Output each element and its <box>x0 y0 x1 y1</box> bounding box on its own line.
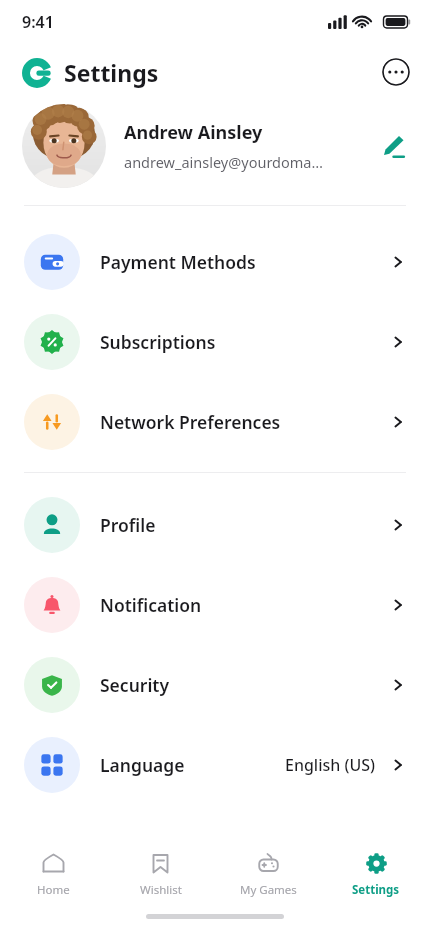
staticText: My Games <box>240 882 297 898</box>
button[interactable]: Home <box>0 840 107 908</box>
staticText: Notification <box>100 593 202 617</box>
button[interactable]: Edit profile <box>378 131 408 161</box>
staticText: Payment Methods <box>100 250 256 274</box>
staticText: andrew_ainsley@yourdoma… <box>124 152 323 172</box>
button[interactable]: Security <box>0 645 430 725</box>
button[interactable]: My Games <box>214 840 322 908</box>
button[interactable]: More options <box>382 58 410 86</box>
staticText: 9:41 <box>22 11 54 33</box>
button[interactable]: Language <box>0 725 430 805</box>
staticText: Settings <box>64 57 159 88</box>
staticText: Wishlist <box>140 882 182 898</box>
button[interactable]: Andrew Ainsley <box>0 100 430 192</box>
staticText: Home <box>37 882 70 898</box>
staticText: Subscriptions <box>100 330 216 354</box>
button[interactable]: Notification <box>0 565 430 645</box>
button[interactable]: Payment Methods <box>0 222 430 302</box>
staticText: Settings <box>352 882 400 898</box>
button[interactable]: Network Preferences <box>0 382 430 462</box>
staticText: Security <box>100 673 170 697</box>
button[interactable]: Profile <box>0 485 430 565</box>
staticText: Profile <box>100 513 156 537</box>
staticText: English (US) <box>285 754 376 776</box>
staticText: Language <box>100 753 185 777</box>
staticText: Network Preferences <box>100 410 281 434</box>
button[interactable]: Wishlist <box>107 840 214 908</box>
button[interactable]: Settings <box>322 840 430 908</box>
staticText: Andrew Ainsley <box>124 120 263 145</box>
button[interactable]: Subscriptions <box>0 302 430 382</box>
